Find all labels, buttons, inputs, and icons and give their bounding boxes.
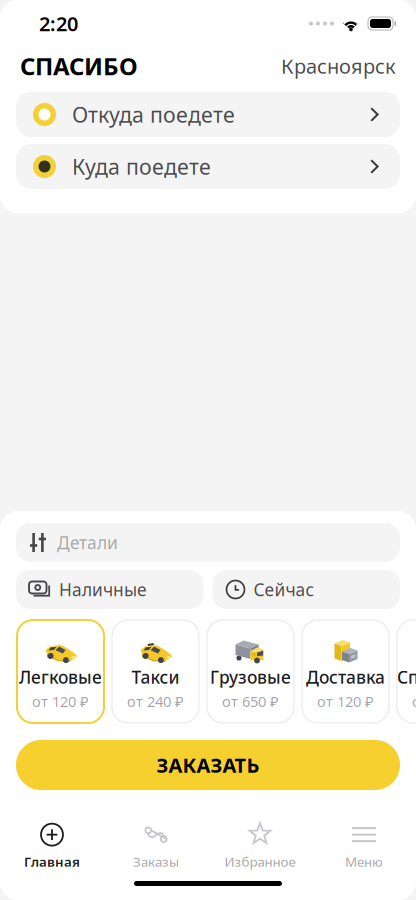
staticText: Наличные: [59, 578, 147, 601]
button[interactable]: Наличные: [16, 570, 203, 609]
staticText: Избранное: [224, 853, 295, 870]
button[interactable]: Такси: [112, 620, 199, 723]
button[interactable]: Меню: [312, 822, 416, 870]
button[interactable]: Грузовые: [207, 620, 294, 723]
button[interactable]: ЗАКАЗАТЬ: [16, 740, 400, 790]
staticText: Доставка: [306, 665, 385, 688]
staticText: от 900 ₽: [412, 691, 416, 711]
staticText: Легковые: [19, 665, 102, 688]
button[interactable]: Избранное: [208, 822, 312, 870]
staticText: Куда поедете: [72, 152, 211, 181]
staticText: Главная: [24, 853, 80, 870]
button[interactable]: Легковые: [17, 620, 104, 723]
button[interactable]: Сейчас: [212, 570, 400, 609]
button[interactable]: Заказы: [104, 822, 208, 870]
staticText: от 650 ₽: [222, 691, 279, 711]
button[interactable]: Спецтехника: [397, 620, 416, 723]
button[interactable]: Детали: [16, 523, 400, 562]
staticText: Такси: [131, 665, 179, 688]
staticText: Грузовые: [210, 665, 291, 688]
staticText: Сейчас: [253, 578, 314, 601]
button[interactable]: Главная: [0, 822, 104, 870]
staticText: Детали: [57, 531, 118, 554]
staticText: Спецтехника: [397, 665, 416, 688]
staticText: от 240 ₽: [127, 691, 184, 711]
button[interactable]: Куда поедете: [16, 144, 400, 189]
button[interactable]: Откуда поедете: [16, 92, 400, 137]
staticText: Заказы: [133, 853, 179, 870]
staticText: Красноярск: [281, 53, 396, 79]
button[interactable]: Красноярск: [281, 53, 396, 79]
staticText: от 120 ₽: [32, 691, 89, 711]
staticText: Откуда поедете: [72, 100, 235, 129]
staticText: 2:20: [39, 10, 78, 37]
button[interactable]: Доставка: [302, 620, 389, 723]
staticText: ЗАКАЗАТЬ: [156, 752, 259, 778]
staticText: СПАСИБО: [20, 50, 138, 82]
staticText: от 120 ₽: [317, 691, 374, 711]
staticText: Меню: [345, 853, 383, 870]
